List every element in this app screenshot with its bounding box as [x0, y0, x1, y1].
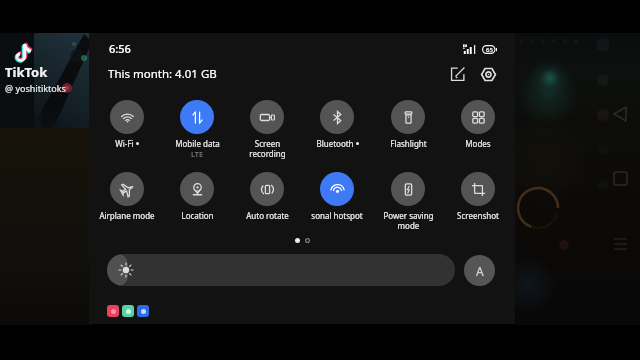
staticText: Screenshot	[457, 210, 499, 221]
staticText: Auto rotate	[246, 210, 289, 221]
staticText: Bluetooth	[316, 138, 354, 149]
staticText: Screen recording	[249, 138, 286, 160]
staticText: Modes	[465, 138, 491, 149]
button[interactable]: Screen recording	[232, 100, 302, 160]
staticText: TikTok	[5, 63, 48, 81]
staticText: 6:56	[109, 41, 131, 56]
button[interactable]: Power saving mode	[373, 172, 443, 232]
staticText: Location	[181, 210, 214, 221]
staticText: sonal hotspot	[311, 210, 363, 221]
button[interactable]: Bluetooth	[302, 100, 372, 149]
button[interactable]: Screenshot	[443, 172, 513, 221]
button[interactable]: App shortcut	[122, 305, 134, 317]
button[interactable]: sonal hotspot	[302, 172, 372, 221]
button[interactable]: Auto rotate	[232, 172, 302, 221]
button[interactable]: Wi-Fi	[92, 100, 162, 149]
staticText: 65	[486, 46, 493, 54]
button[interactable]: Location	[162, 172, 232, 221]
staticText: Mobile data	[175, 138, 220, 149]
staticText: @ yoshitiktoks	[5, 82, 66, 94]
button[interactable]: App shortcut	[107, 305, 119, 317]
button[interactable]: Modes	[443, 100, 513, 149]
staticText: A	[476, 263, 484, 279]
button[interactable]: Brightness	[107, 254, 455, 286]
staticText: Wi-Fi	[115, 138, 134, 149]
button[interactable]: App shortcut	[137, 305, 149, 317]
button[interactable]: Airplane mode	[92, 172, 162, 221]
button[interactable]: Mobile data	[162, 100, 232, 159]
staticText: Power saving mode	[383, 210, 434, 232]
button[interactable]: Auto brightness	[464, 255, 495, 286]
button[interactable]: Settings	[476, 62, 500, 86]
staticText: Flashlight	[390, 138, 427, 149]
staticText: This month: 4.01 GB	[108, 66, 217, 82]
button[interactable]: Flashlight	[373, 100, 443, 149]
staticText: LTE	[191, 149, 204, 159]
staticText: Airplane mode	[99, 210, 155, 221]
button[interactable]: Edit quick settings	[446, 62, 470, 86]
